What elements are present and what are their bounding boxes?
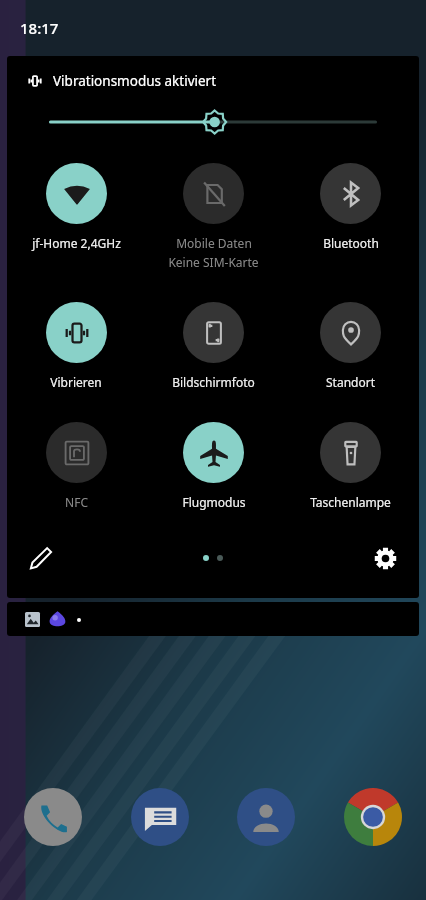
button[interactable]: Settings <box>365 538 405 578</box>
staticText: Keine SIM-Karte <box>168 254 259 270</box>
button[interactable]: jf-Home 2,4GHz <box>7 163 145 251</box>
staticText: Vibrieren <box>50 374 102 390</box>
button[interactable]: Edit tiles <box>21 538 61 578</box>
staticText: Vibrationsmodus aktiviert <box>53 72 217 90</box>
button[interactable]: Bluetooth <box>282 163 419 251</box>
staticText: jf-Home 2,4GHz <box>32 235 121 251</box>
staticText: Flugmodus <box>182 494 246 510</box>
staticText: Mobile Daten <box>176 235 252 251</box>
staticText: Bluetooth <box>323 235 379 251</box>
button[interactable]: NFC <box>7 422 145 510</box>
button[interactable]: Brightness <box>7 107 419 137</box>
button[interactable]: Contacts <box>235 786 297 848</box>
button[interactable]: Bildschirmfoto <box>145 302 282 390</box>
staticText: Standort <box>326 374 375 390</box>
button[interactable]: Vibrieren <box>7 302 145 390</box>
button[interactable]: Messages <box>129 786 191 848</box>
button[interactable] <box>7 602 419 636</box>
button[interactable]: Flugmodus <box>145 422 282 510</box>
button[interactable]: Taschenlampe <box>282 422 419 510</box>
button[interactable]: Phone <box>22 786 84 848</box>
button[interactable]: Chrome <box>342 786 404 848</box>
staticText: NFC <box>65 494 88 510</box>
staticText: Taschenlampe <box>310 494 391 510</box>
button[interactable]: Standort <box>282 302 419 390</box>
staticText: 18:17 <box>20 18 59 38</box>
staticText: Bildschirmfoto <box>172 374 255 390</box>
button[interactable]: Mobile Daten <box>145 163 282 270</box>
